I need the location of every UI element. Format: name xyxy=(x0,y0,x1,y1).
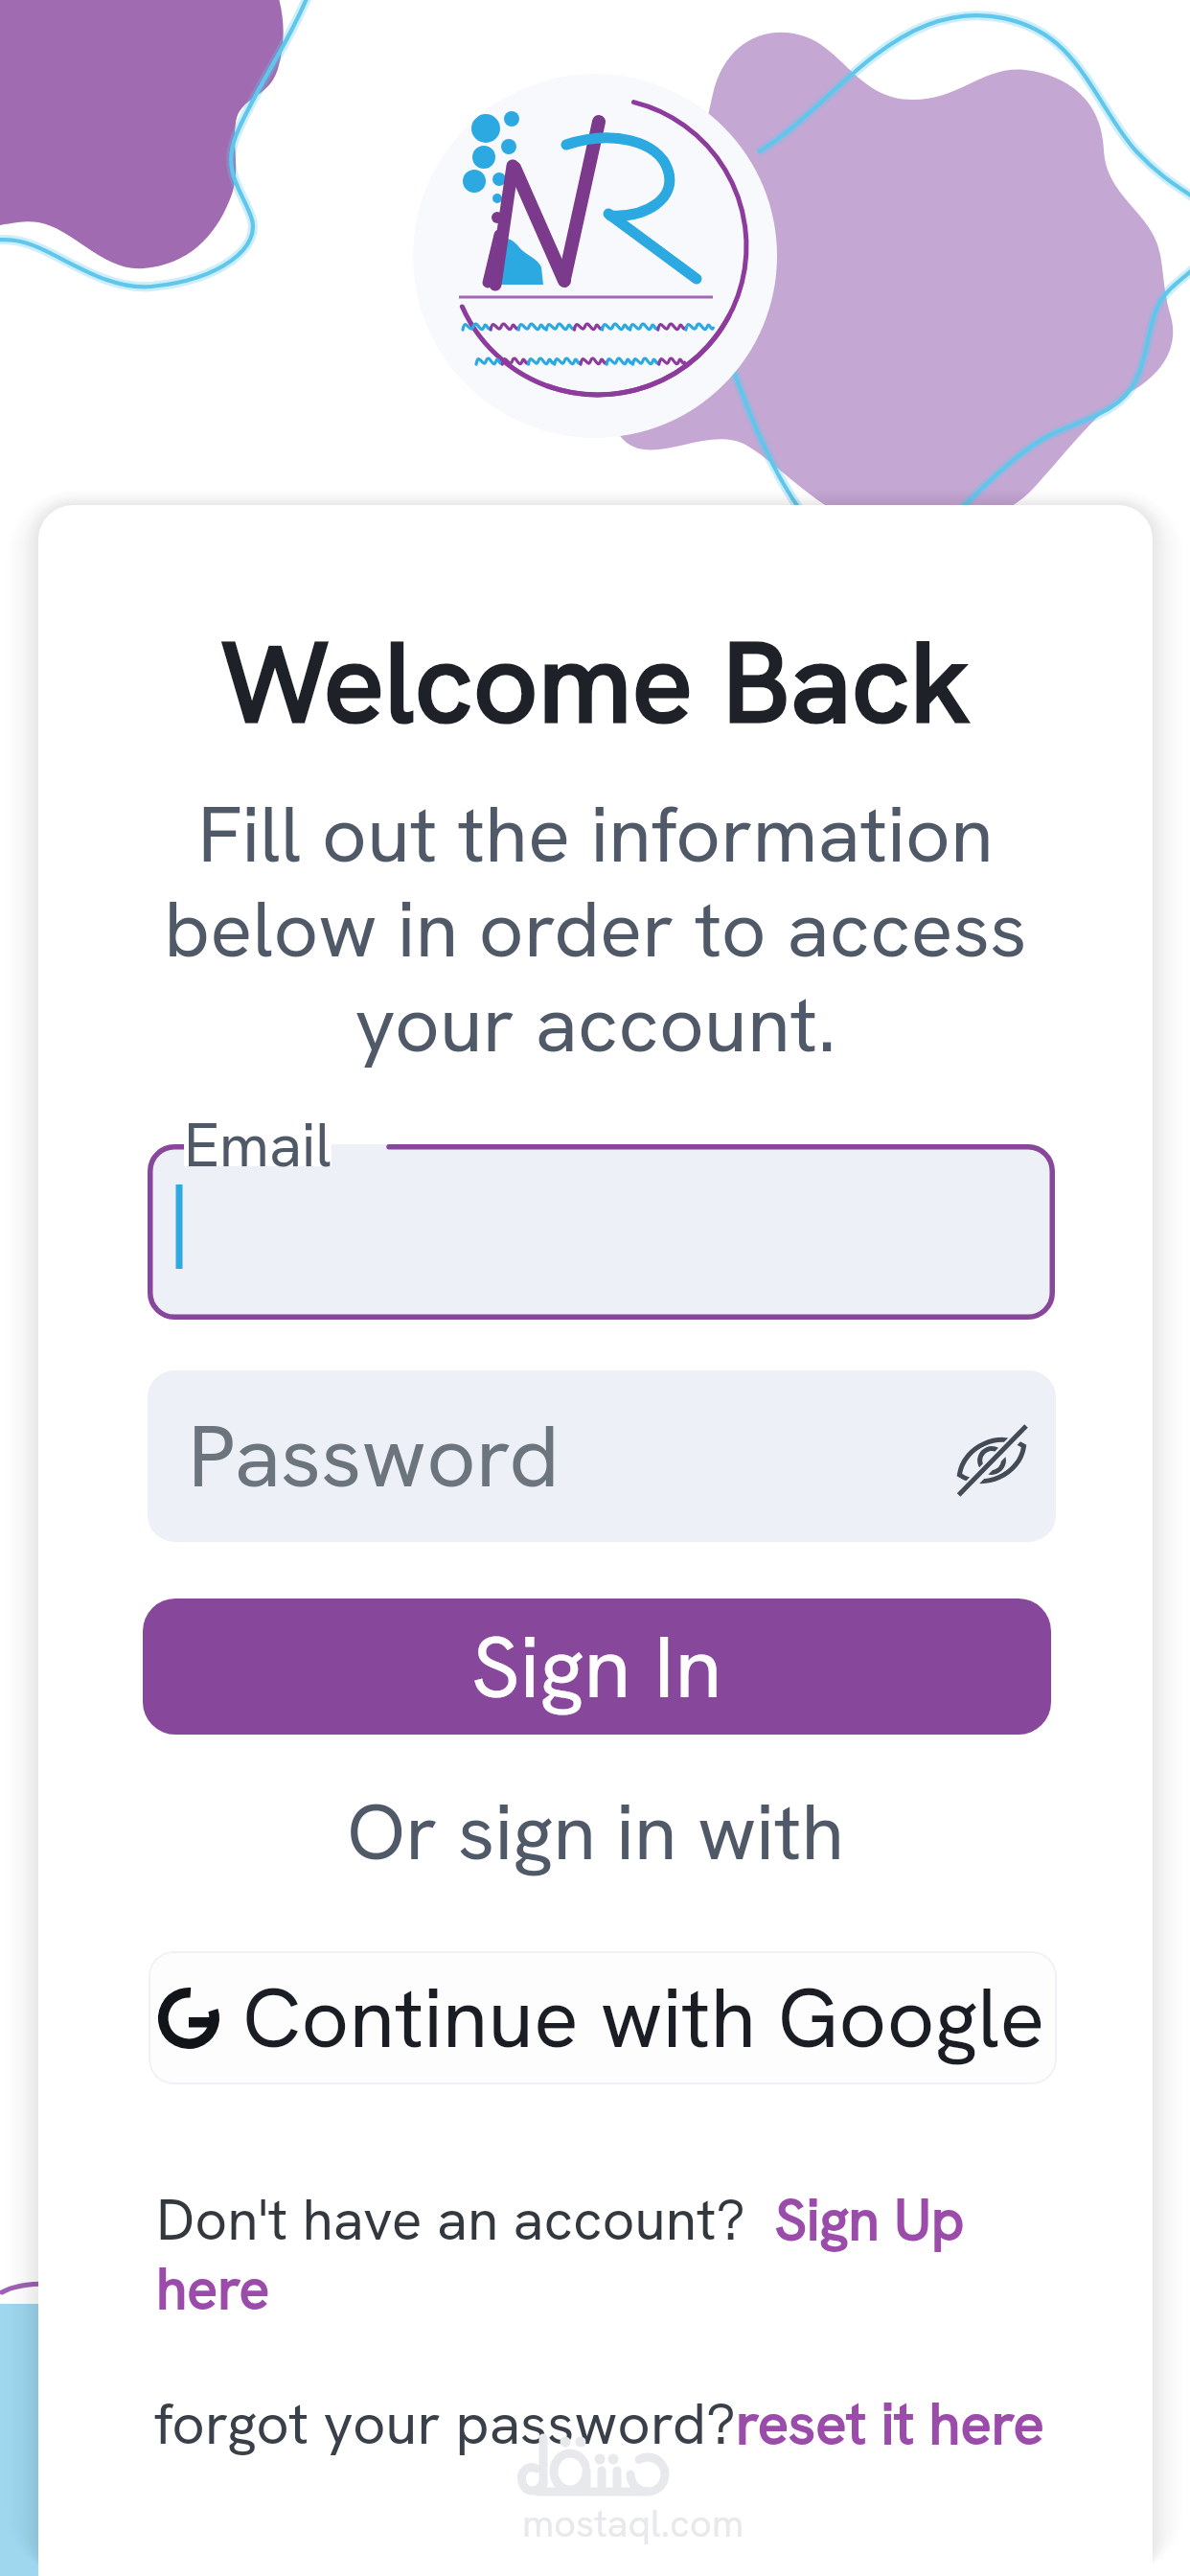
button[interactable]: Sign In xyxy=(143,1598,1051,1735)
button[interactable]: Continue with Google xyxy=(149,1951,1057,2084)
button[interactable]: Password xyxy=(148,1370,1056,1542)
staticText: Or sign in with xyxy=(38,1781,1153,1883)
staticText: mostaql.com xyxy=(522,2498,744,2548)
staticText: Continue with Google xyxy=(242,1964,1045,2072)
staticText: Welcome Back xyxy=(38,609,1153,756)
button[interactable]: Don't have an account? Sign Up here xyxy=(156,2183,1018,2326)
button[interactable]: forgot your password?reset it here xyxy=(154,2386,1044,2461)
staticText: Email xyxy=(184,1106,332,1184)
button[interactable] xyxy=(148,1144,1055,1320)
staticText: Sign In xyxy=(471,1611,722,1723)
button[interactable]: Show password xyxy=(939,1408,1044,1513)
staticText: Password xyxy=(188,1400,560,1512)
staticText: Fill out the information below in order … xyxy=(161,783,1030,1075)
